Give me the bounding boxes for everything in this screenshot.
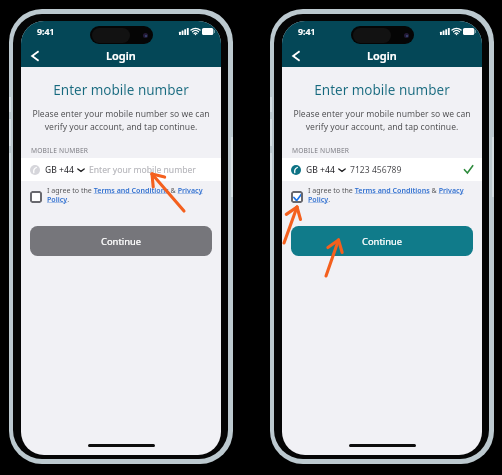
staticText: GB +44 — [306, 164, 335, 176]
staticText: I agree to the Terms and Conditions & Pr… — [308, 185, 478, 204]
staticText: I agree to the Terms and Conditions & Pr… — [47, 185, 217, 204]
other: Agree to terms — [291, 191, 303, 203]
button[interactable]: Back — [24, 45, 46, 67]
staticText: GB +44 — [45, 164, 74, 176]
staticText: Enter your mobile number — [89, 164, 196, 176]
other: Agree to terms — [30, 191, 42, 203]
button[interactable]: Agree to terms — [291, 185, 478, 204]
staticText: Login — [367, 48, 397, 63]
staticText: Continue — [362, 235, 403, 248]
staticText: 7123 456789 — [350, 164, 402, 176]
staticText: Continue — [101, 235, 142, 248]
button[interactable]: Back — [285, 45, 307, 67]
button[interactable]: GB +44 — [21, 158, 221, 181]
staticText: 9:41 — [298, 26, 316, 38]
staticText: Please enter your mobile number so we ca… — [292, 108, 472, 132]
staticText: Enter mobile number — [21, 81, 221, 99]
staticText: Enter mobile number — [282, 81, 482, 99]
staticText: 9:41 — [37, 26, 55, 38]
button[interactable]: Continue — [291, 226, 473, 256]
staticText: Login — [106, 48, 136, 63]
staticText: Please enter your mobile number so we ca… — [31, 108, 211, 132]
staticText: MOBILE NUMBER — [292, 146, 350, 155]
button[interactable]: Agree to terms — [30, 185, 217, 204]
button[interactable]: Continue — [30, 226, 212, 256]
button[interactable]: GB +44 — [282, 158, 482, 181]
staticText: MOBILE NUMBER — [31, 146, 89, 155]
